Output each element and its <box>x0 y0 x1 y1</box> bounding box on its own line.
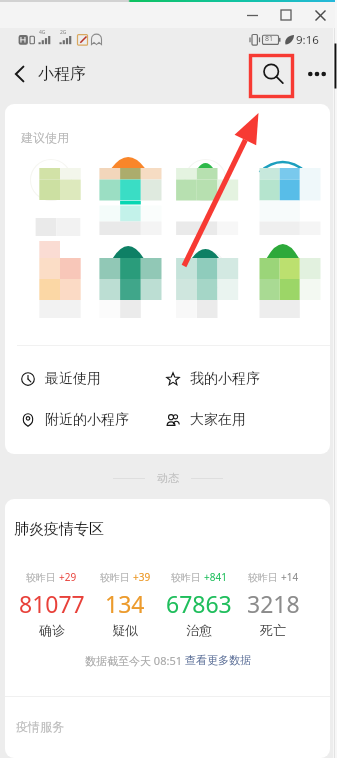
staticText: 疑似 <box>112 622 138 638</box>
staticText: 附近的小程序 <box>45 411 129 429</box>
staticText: 较昨日 <box>248 570 281 584</box>
staticText: 较昨日 <box>171 570 204 584</box>
staticText: 动态 <box>157 471 179 485</box>
button[interactable]: Search <box>251 52 294 96</box>
button[interactable]: Maximize <box>269 2 303 28</box>
staticText: 肺炎疫情专区 <box>14 520 104 539</box>
staticText: 死亡 <box>260 622 286 638</box>
staticText: 治愈 <box>186 622 212 638</box>
button[interactable]: Back <box>5 55 34 93</box>
staticText: 确诊 <box>39 622 65 638</box>
button[interactable]: 我的小程序 <box>150 358 330 399</box>
button[interactable]: 数据截至今天 08:51 <box>5 651 330 669</box>
button[interactable]: Minimize <box>235 2 269 28</box>
staticText: 疫情服务 <box>16 719 64 734</box>
staticText: +29 <box>59 570 77 584</box>
button[interactable]: Close <box>303 2 337 28</box>
staticText: 9:16 <box>296 32 319 48</box>
staticText: 小程序 <box>38 64 86 84</box>
staticText: 大家在用 <box>190 411 246 429</box>
staticText: 较昨日 <box>26 570 59 584</box>
staticText: 较昨日 <box>100 570 133 584</box>
button[interactable]: More options <box>298 54 335 94</box>
button[interactable]: 大家在用 <box>150 399 330 440</box>
staticText: +841 <box>204 570 227 584</box>
button[interactable]: 附近的小程序 <box>5 399 150 440</box>
staticText: 81077 <box>19 588 85 619</box>
staticText: +39 <box>133 570 151 584</box>
staticText: 建议使用 <box>21 130 69 145</box>
staticText: 最近使用 <box>45 370 101 388</box>
staticText: 我的小程序 <box>190 370 260 388</box>
staticText: 134 <box>105 588 145 619</box>
staticText: 3218 <box>247 588 300 619</box>
staticText: 2G <box>60 29 67 36</box>
button[interactable]: 最近使用 <box>5 358 150 399</box>
staticText: +14 <box>281 570 299 584</box>
staticText: 查看更多数据 <box>185 653 251 667</box>
staticText: 数据截至今天 08:51 <box>85 653 185 668</box>
staticText: 4G <box>39 29 46 36</box>
staticText: 81 <box>265 34 274 44</box>
staticText: 67863 <box>166 588 232 619</box>
